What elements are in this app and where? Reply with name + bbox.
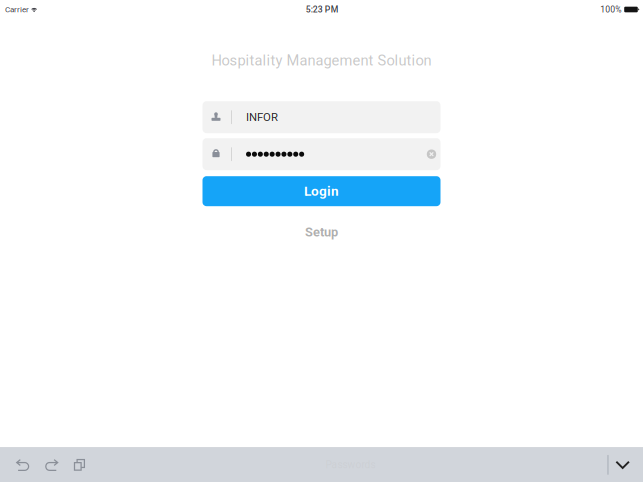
button[interactable]: Clear text: [418, 139, 444, 169]
button[interactable]: Paste: [66, 448, 94, 482]
button[interactable]: Login: [202, 176, 440, 206]
staticText: 5:23 PM: [306, 4, 339, 15]
staticText: Login: [304, 183, 339, 199]
staticText: Setup: [305, 225, 338, 240]
button[interactable]: Redo: [37, 448, 66, 482]
staticText: 100%: [600, 4, 621, 15]
button[interactable]: Setup: [202, 224, 440, 240]
button[interactable]: Hide keyboard: [609, 448, 636, 482]
staticText: INFOR: [246, 110, 278, 124]
staticText: Carrier: [5, 5, 29, 14]
staticText: Hospitality Management Solution: [211, 52, 431, 69]
button[interactable]: Undo: [9, 448, 37, 482]
